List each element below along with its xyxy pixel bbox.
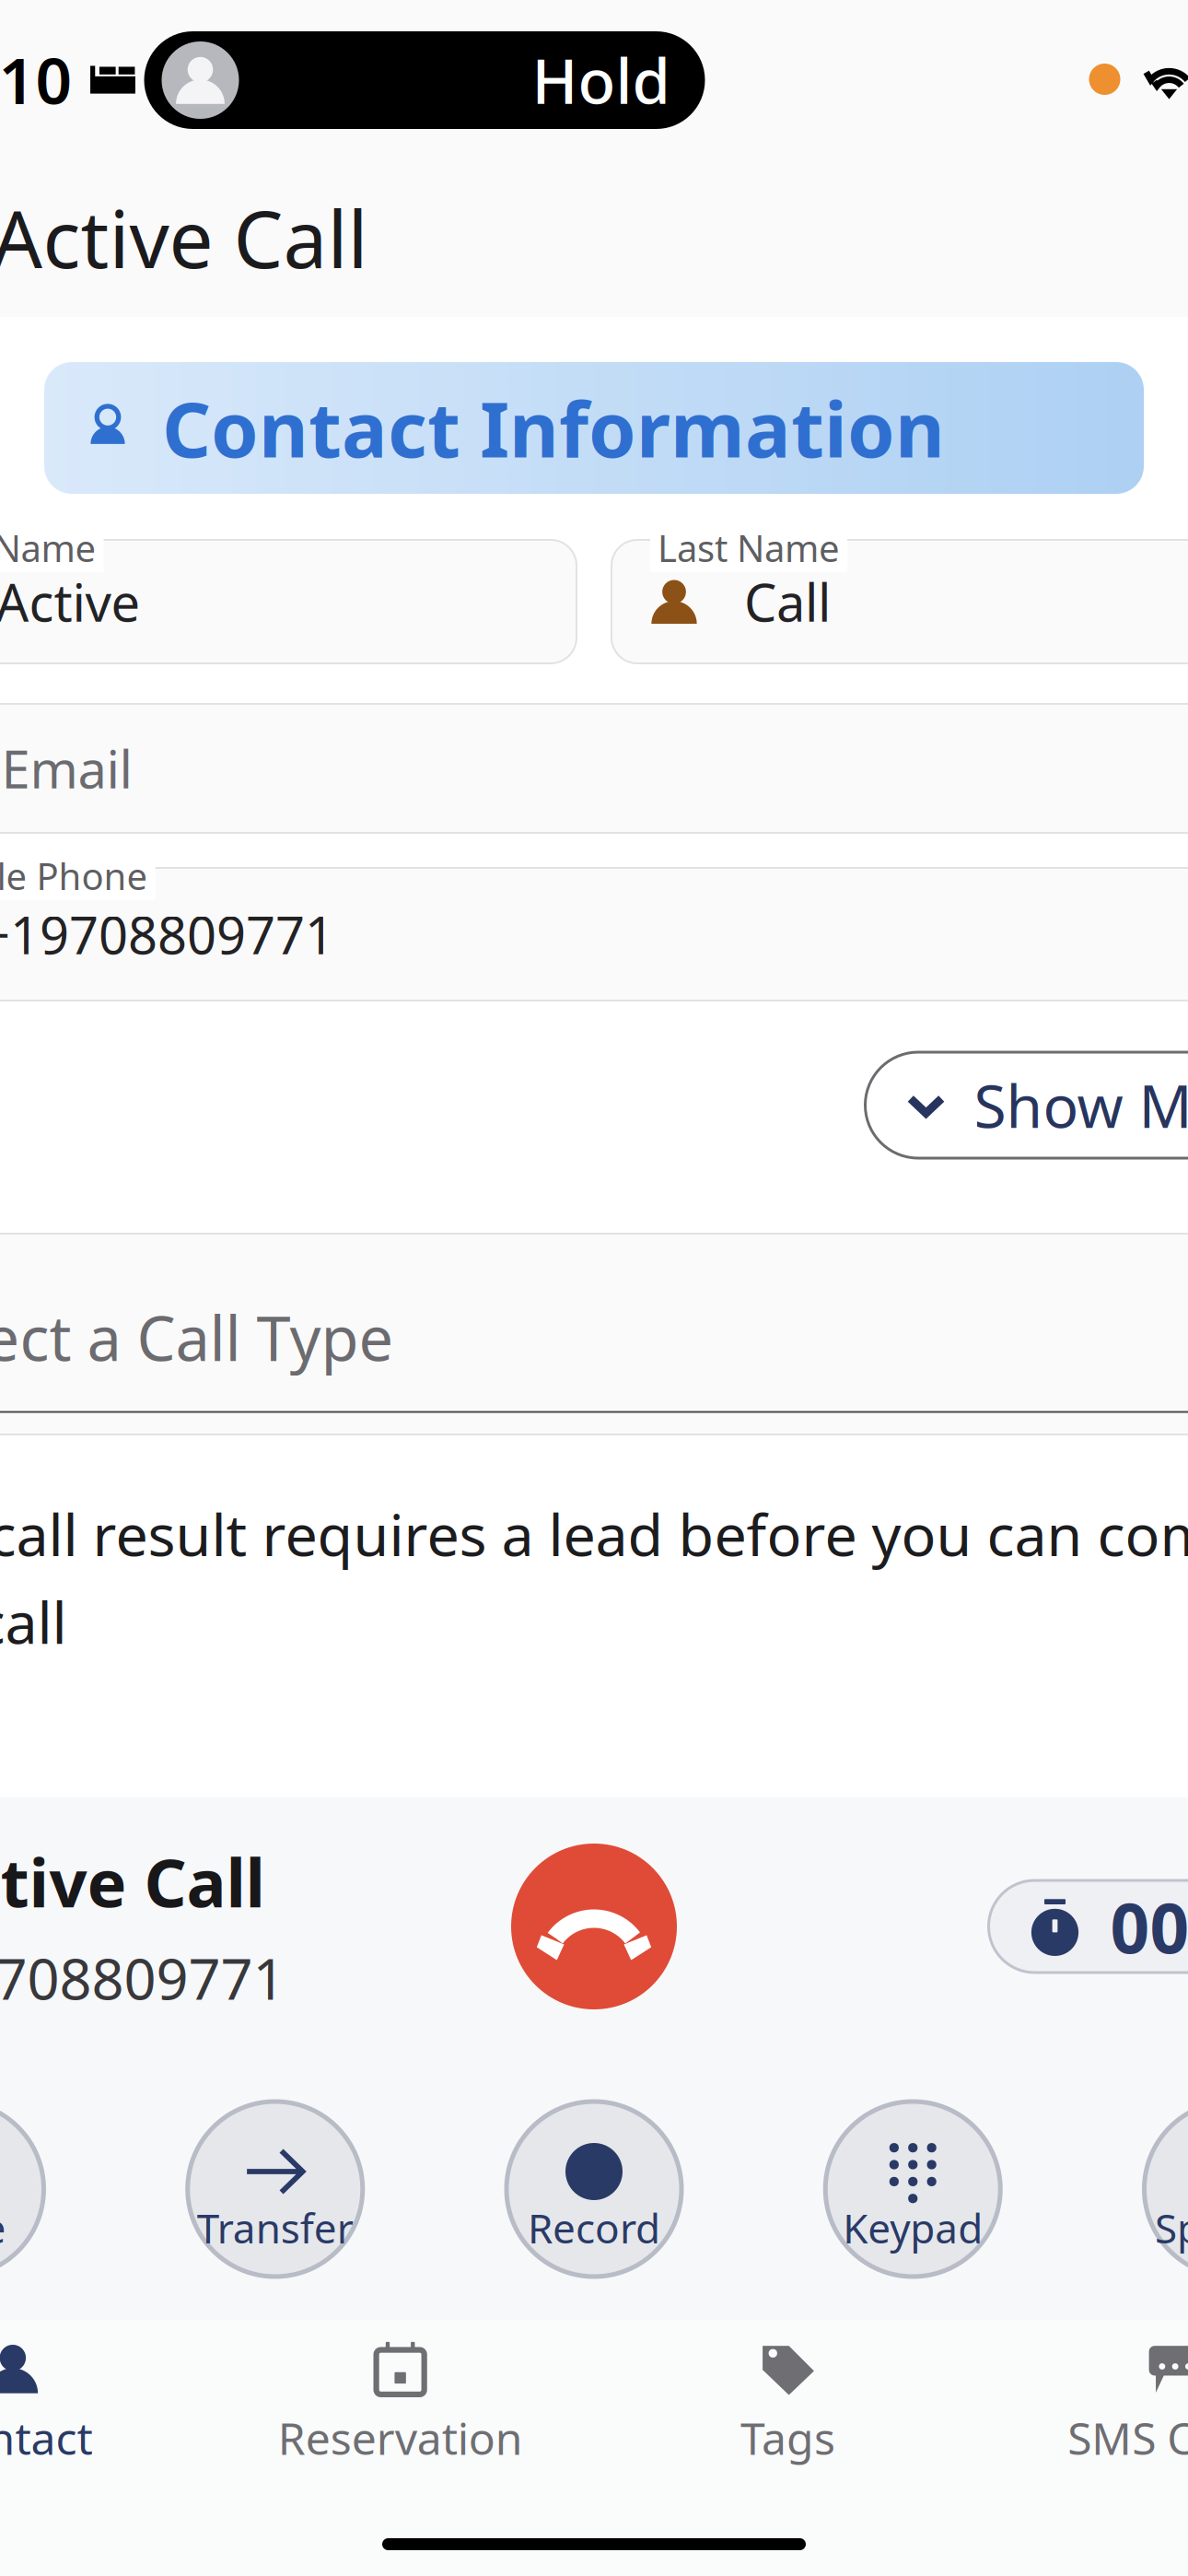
staticText: Show More xyxy=(974,1066,1188,1144)
staticText: Active Call xyxy=(0,1838,265,1926)
staticText: Record xyxy=(528,2201,660,2255)
staticText: Keypad xyxy=(843,2201,983,2255)
button[interactable]: End call xyxy=(511,1844,677,2009)
button[interactable]: SMS Optin xyxy=(982,2320,1188,2482)
staticText: Hold xyxy=(532,39,670,121)
staticText: Mobile Phone xyxy=(0,851,148,900)
staticText: This call result requires a lead before … xyxy=(0,1495,1188,1572)
staticText: Last Name xyxy=(658,523,840,572)
button[interactable]: Reservation xyxy=(206,2320,594,2482)
staticText: First Name xyxy=(0,523,96,572)
staticText: Active Call xyxy=(0,185,368,290)
staticText: +19708809771 xyxy=(0,900,334,968)
button[interactable]: Record xyxy=(507,2102,681,2277)
button[interactable]: Contact xyxy=(0,2320,207,2482)
button[interactable]: Transfer xyxy=(188,2102,363,2277)
staticText: this call xyxy=(0,1583,67,1660)
staticText: Transfer xyxy=(197,2201,353,2255)
staticText: Contact xyxy=(0,2408,92,2467)
staticText: Speaker xyxy=(1155,2201,1188,2255)
staticText: +19708809771 xyxy=(0,1940,285,2015)
button[interactable]: Tags xyxy=(594,2320,982,2482)
staticText: Select a Call Type xyxy=(0,1296,394,1378)
button[interactable]: Keypad xyxy=(825,2102,1000,2277)
staticText: Active xyxy=(0,567,140,636)
button[interactable]: Mute xyxy=(0,2102,44,2277)
button[interactable]: Speaker xyxy=(1144,2102,1188,2277)
staticText: Call xyxy=(744,567,831,636)
staticText: Contact Information xyxy=(162,377,945,479)
staticText: 12:10 xyxy=(0,37,72,122)
button[interactable]: Show More xyxy=(865,1052,1188,1158)
staticText: Tags xyxy=(740,2408,835,2467)
staticText: SMS Optin xyxy=(1067,2408,1188,2467)
staticText: Reservation xyxy=(278,2408,523,2467)
staticText: Email xyxy=(1,734,132,803)
staticText: Mute xyxy=(0,2201,6,2255)
staticText: 00:21 xyxy=(1110,1881,1188,1972)
